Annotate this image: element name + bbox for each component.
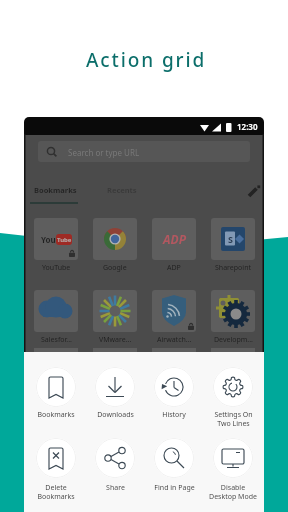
staticText: Find in Page xyxy=(154,483,195,493)
button[interactable] xyxy=(248,184,261,197)
button[interactable] xyxy=(36,438,76,478)
staticText: You xyxy=(41,234,56,245)
staticText: Delete Bookmarks xyxy=(37,483,75,501)
staticText: VMware... xyxy=(99,335,132,345)
button[interactable] xyxy=(154,367,194,407)
button[interactable] xyxy=(36,367,76,407)
staticText: Search or type URL xyxy=(68,147,140,158)
staticText: Sharepoint xyxy=(215,263,251,273)
button[interactable]: You xyxy=(34,218,78,260)
button[interactable] xyxy=(154,438,194,478)
button[interactable] xyxy=(95,367,135,407)
button[interactable] xyxy=(213,438,253,478)
button[interactable] xyxy=(213,367,253,407)
staticText: Bookmarks xyxy=(37,410,75,420)
button[interactable] xyxy=(93,218,137,260)
staticText: Developm... xyxy=(214,335,253,345)
button[interactable] xyxy=(34,290,78,332)
staticText: Settings On Two Lines xyxy=(214,410,253,428)
button[interactable]: Search or type URL xyxy=(38,141,250,162)
button[interactable] xyxy=(152,290,196,332)
button[interactable] xyxy=(93,290,137,332)
staticText: ADP xyxy=(167,263,181,273)
staticText: Downloads xyxy=(97,410,134,420)
staticText: Tube xyxy=(57,236,72,244)
staticText: Share xyxy=(106,483,125,493)
button[interactable]: S xyxy=(211,218,255,260)
staticText: Google xyxy=(103,263,127,273)
button[interactable] xyxy=(95,438,135,478)
staticText: History xyxy=(162,410,186,420)
staticText: Salesfor... xyxy=(41,335,72,345)
staticText: Airwatch... xyxy=(157,335,192,345)
button[interactable]: Bookmarks xyxy=(34,185,77,195)
staticText: S xyxy=(228,233,233,245)
staticText: YouTube xyxy=(42,263,71,273)
staticText: 12:30 xyxy=(237,121,258,132)
staticText: ADP xyxy=(163,231,186,247)
staticText: Action grid xyxy=(86,47,207,73)
button[interactable] xyxy=(211,290,255,332)
button[interactable]: Recents xyxy=(107,185,137,195)
staticText: Disable Desktop Mode xyxy=(209,483,257,501)
button[interactable]: ADP xyxy=(152,218,196,260)
